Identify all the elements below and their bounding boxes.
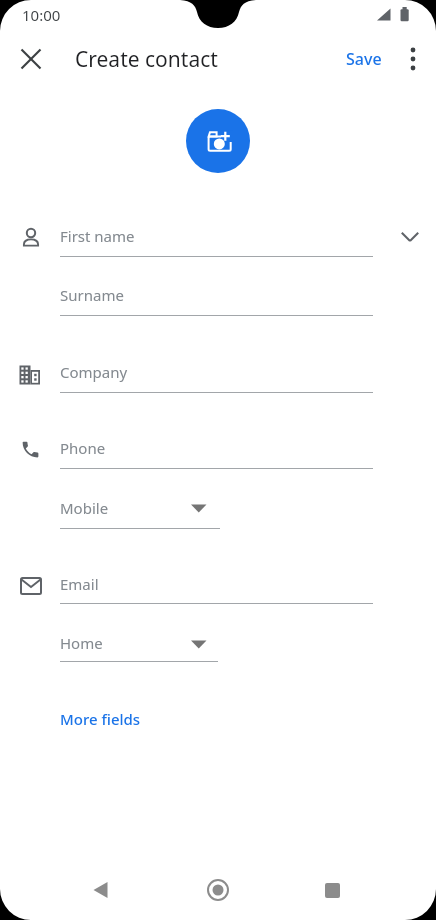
button[interactable]: More fields — [60, 707, 141, 731]
button[interactable] — [400, 45, 426, 73]
button[interactable] — [54, 434, 384, 474]
button[interactable] — [194, 868, 242, 912]
button[interactable] — [54, 494, 224, 534]
button[interactable] — [14, 42, 48, 76]
staticText: First name — [60, 226, 135, 246]
button[interactable] — [54, 570, 384, 610]
staticText: Create contact — [75, 45, 218, 73]
staticText: Email — [60, 574, 99, 594]
staticText: 10:00 — [22, 5, 61, 25]
staticText: Mobile — [60, 498, 109, 518]
button[interactable] — [308, 868, 356, 912]
button[interactable] — [54, 358, 384, 398]
staticText: Save — [346, 48, 382, 70]
staticText: Company — [60, 362, 128, 382]
staticText: Phone — [60, 438, 106, 458]
button[interactable] — [54, 630, 224, 670]
button[interactable] — [186, 109, 250, 173]
button[interactable] — [54, 222, 384, 262]
staticText: Home — [60, 633, 103, 653]
staticText: More fields — [60, 709, 141, 729]
button[interactable]: Save — [346, 47, 382, 71]
button[interactable] — [54, 281, 384, 321]
button[interactable] — [394, 222, 426, 252]
button[interactable] — [76, 868, 124, 912]
staticText: Surname — [60, 285, 124, 305]
